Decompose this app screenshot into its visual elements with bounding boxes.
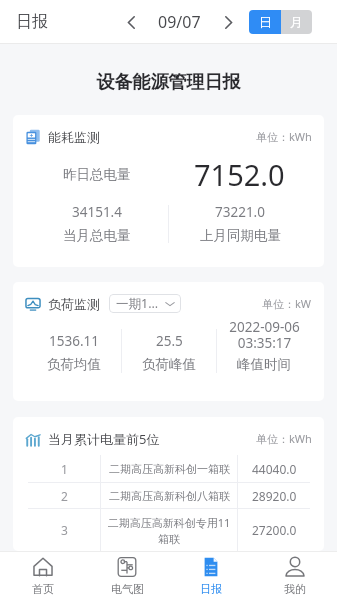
staticText: 负荷峰值	[142, 356, 196, 373]
staticText: 负荷监测	[48, 296, 100, 312]
staticText: 25.5	[156, 332, 183, 350]
staticText: 单位：kWh	[256, 129, 312, 144]
staticText: 月	[290, 14, 303, 30]
staticText: 负荷均值	[47, 356, 101, 373]
staticText: 单位：kWh	[256, 431, 312, 446]
staticText: 峰值时间	[237, 356, 291, 373]
staticText: 3	[61, 522, 68, 538]
button[interactable]: Next day	[215, 9, 241, 35]
button[interactable]: 一期1...	[109, 294, 181, 313]
staticText: 日报	[16, 12, 48, 32]
button[interactable]: 我的	[253, 551, 337, 600]
staticText: 27200.0	[252, 522, 297, 538]
staticText: 日	[259, 14, 272, 30]
staticText: 73221.0	[215, 203, 265, 221]
staticText: 一期1...	[116, 295, 159, 312]
staticText: 二期高压高新科创一箱联	[109, 462, 230, 476]
staticText: 二期高压高新科创专用11箱联	[106, 515, 232, 546]
staticText: 当月总电量	[63, 227, 131, 244]
staticText: 上月同期电量	[200, 227, 281, 244]
staticText: 昨日总电量	[63, 166, 131, 183]
staticText: 能耗监测	[48, 129, 100, 145]
staticText: 34151.4	[72, 203, 122, 221]
staticText: 7152.0	[194, 155, 285, 194]
staticText: 44040.0	[252, 461, 297, 477]
button[interactable]: 首页	[0, 551, 85, 600]
staticText: 1	[61, 461, 68, 477]
staticText: 1536.11	[49, 332, 99, 350]
staticText: 2	[61, 488, 68, 504]
button[interactable]: 日报	[169, 551, 253, 600]
staticText: 日报	[200, 582, 222, 596]
staticText: 当月累计电量前5位	[48, 430, 160, 448]
staticText: 设备能源管理日报	[0, 71, 337, 94]
staticText: 单位：kW	[262, 296, 312, 311]
staticText: 首页	[32, 582, 54, 596]
button[interactable]: 月	[281, 10, 312, 34]
button[interactable]: 日	[249, 10, 281, 34]
staticText: 二期高压高新科创八箱联	[109, 489, 230, 503]
button[interactable]: 电气图	[85, 551, 169, 600]
staticText: 我的	[284, 582, 306, 596]
staticText: 09/07	[158, 11, 201, 33]
button[interactable]: Previous day	[118, 9, 144, 35]
staticText: 2022-09-06 03:35:17	[229, 318, 300, 352]
staticText: 电气图	[111, 582, 144, 596]
staticText: 28920.0	[252, 488, 297, 504]
